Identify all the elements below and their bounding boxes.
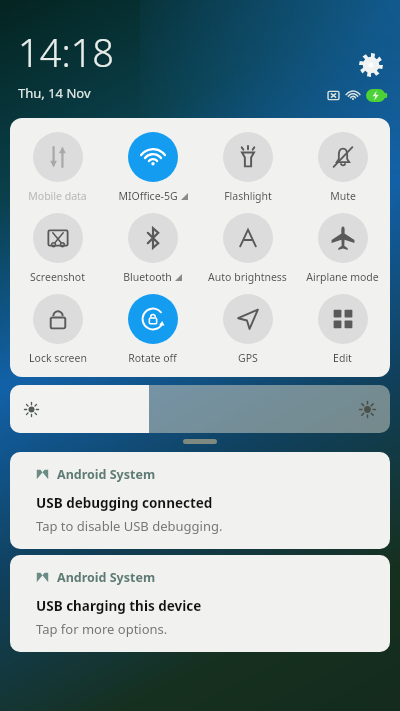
staticText: Android System <box>57 466 156 483</box>
staticText: Lock screen <box>29 351 87 365</box>
staticText: Flashlight <box>224 189 272 203</box>
button[interactable]: Android System <box>10 452 390 549</box>
staticText: USB charging this device <box>36 597 202 615</box>
button[interactable]: Rotate off <box>105 294 200 365</box>
staticText: Airplane mode <box>306 270 379 284</box>
staticText: Edit <box>333 351 352 365</box>
staticText: GPS <box>238 351 258 365</box>
staticText: Mobile data <box>28 189 87 203</box>
button[interactable]: Android System <box>10 555 390 652</box>
button[interactable]: Lock screen <box>10 294 105 365</box>
staticText: Tap for more options. <box>36 620 168 638</box>
staticText: MIOffice-5G <box>118 189 178 203</box>
staticText: Screenshot <box>30 270 85 284</box>
staticText: Auto brightness <box>208 270 287 284</box>
button[interactable]: Edit <box>295 294 390 365</box>
button[interactable]: GPS <box>200 294 295 365</box>
button[interactable]: MIOffice-5G <box>105 132 200 203</box>
button[interactable]: Mobile data <box>10 132 105 203</box>
button[interactable]: Auto brightness <box>200 213 295 284</box>
staticText: Rotate off <box>128 351 177 365</box>
button[interactable]: Mute <box>295 132 390 203</box>
staticText: USB debugging connected <box>36 494 213 512</box>
staticText: Tap to disable USB debugging. <box>36 517 223 535</box>
button[interactable]: Flashlight <box>200 132 295 203</box>
staticText: Bluetooth <box>123 270 172 284</box>
button[interactable]: Screenshot <box>10 213 105 284</box>
button[interactable]: Brightness <box>10 385 390 433</box>
staticText: Android System <box>57 569 156 586</box>
staticText: Thu, 14 Nov <box>18 84 91 102</box>
button[interactable]: Airplane mode <box>295 213 390 284</box>
staticText: 14:18 <box>18 26 115 78</box>
button[interactable]: Settings <box>356 50 386 80</box>
staticText: Mute <box>330 189 356 203</box>
button[interactable]: Bluetooth <box>105 213 200 284</box>
button[interactable]: Expand <box>183 439 217 444</box>
